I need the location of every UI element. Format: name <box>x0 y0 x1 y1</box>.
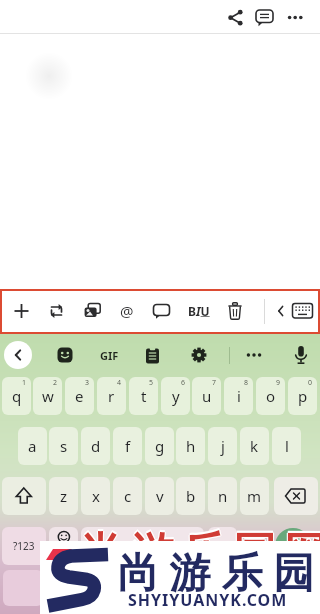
button[interactable]: e <box>65 377 94 415</box>
button[interactable] <box>274 477 318 515</box>
button[interactable]: w <box>33 377 62 415</box>
button[interactable] <box>2 477 46 515</box>
button[interactable]: s <box>49 427 78 465</box>
button[interactable]: j <box>208 427 237 465</box>
button[interactable] <box>49 527 78 565</box>
staticText: . <box>220 536 225 556</box>
staticText: g <box>155 436 165 456</box>
staticText: BIU <box>188 303 210 319</box>
button[interactable] <box>286 8 305 27</box>
staticText: d <box>91 436 101 456</box>
staticText: n <box>218 486 228 506</box>
button[interactable] <box>245 347 265 363</box>
staticText: f <box>125 436 131 456</box>
button[interactable] <box>13 300 30 322</box>
staticText: 尚游乐园网 <box>77 527 320 581</box>
staticText: i <box>237 386 241 406</box>
staticText: 4 <box>117 378 122 388</box>
staticText: y <box>172 386 180 406</box>
button[interactable]: a <box>18 427 47 465</box>
button[interactable] <box>46 300 67 322</box>
button[interactable]: u <box>192 377 221 415</box>
button[interactable] <box>225 300 245 322</box>
button[interactable]: z <box>49 477 78 515</box>
staticText: z <box>60 486 68 506</box>
staticText: 5 <box>149 378 154 388</box>
button[interactable]: c <box>113 477 142 515</box>
staticText: v <box>156 486 164 506</box>
staticText: a <box>28 436 37 456</box>
button[interactable]: @ <box>116 299 137 323</box>
button[interactable]: q <box>2 377 31 415</box>
button[interactable] <box>293 344 309 366</box>
staticText: ?123 <box>13 539 35 553</box>
button[interactable] <box>4 341 32 369</box>
button[interactable]: . <box>208 527 237 565</box>
button[interactable] <box>276 303 286 319</box>
staticText: 尚游乐园网 <box>75 527 320 581</box>
button[interactable]: n <box>208 477 237 515</box>
staticText: c <box>124 486 132 506</box>
staticText: b <box>186 486 196 506</box>
staticText: 尚游乐园网 <box>76 525 320 579</box>
button[interactable] <box>190 346 208 364</box>
button[interactable]: h <box>176 427 205 465</box>
button[interactable] <box>226 8 245 27</box>
staticText: p <box>298 386 308 406</box>
staticText: 尚游乐园网 <box>76 528 320 582</box>
staticText: 尚游乐园网 <box>76 527 320 581</box>
staticText: u <box>202 386 212 406</box>
staticText: h <box>186 436 196 456</box>
staticText: 2 <box>53 378 58 388</box>
button[interactable]: d <box>81 427 110 465</box>
staticText: e <box>75 386 84 406</box>
button[interactable]: ?123 <box>2 527 46 565</box>
button[interactable]: t <box>129 377 158 415</box>
staticText: m <box>247 486 262 506</box>
staticText: 1 <box>22 378 27 388</box>
staticText: t <box>141 386 147 406</box>
staticText: 8 <box>244 378 249 388</box>
staticText: o <box>266 386 276 406</box>
button[interactable]: x <box>81 477 110 515</box>
staticText: l <box>285 436 289 456</box>
button[interactable]: r <box>97 377 126 415</box>
staticText: 9 <box>276 378 281 388</box>
button[interactable]: GIF <box>96 347 122 363</box>
staticText: q <box>12 386 22 406</box>
button[interactable] <box>275 528 311 564</box>
button[interactable]: i <box>224 377 253 415</box>
staticText: SHYIYUANYK.COM <box>128 589 288 607</box>
staticText: 3 <box>85 378 90 388</box>
button[interactable] <box>151 300 172 322</box>
staticText: GIF <box>100 348 119 363</box>
button[interactable] <box>81 527 204 565</box>
staticText: r <box>108 386 115 406</box>
button[interactable]: f <box>113 427 142 465</box>
staticText: k <box>250 436 259 456</box>
button[interactable]: v <box>145 477 174 515</box>
button[interactable]: m <box>240 477 269 515</box>
button[interactable]: b <box>176 477 205 515</box>
button[interactable]: p <box>288 377 317 415</box>
button[interactable] <box>254 7 275 28</box>
button[interactable]: y <box>161 377 190 415</box>
staticText: x <box>92 486 100 506</box>
staticText: 尚游乐园 <box>112 548 320 600</box>
staticText: w <box>42 386 54 406</box>
button[interactable]: g <box>145 427 174 465</box>
button[interactable] <box>144 346 161 365</box>
staticText: 7 <box>212 378 217 388</box>
button[interactable] <box>82 300 103 322</box>
button[interactable] <box>291 301 314 321</box>
button[interactable]: o <box>256 377 285 415</box>
staticText: j <box>221 436 225 456</box>
button[interactable]: k <box>240 427 269 465</box>
button[interactable]: BIU <box>185 300 213 322</box>
staticText: s <box>60 436 68 456</box>
staticText: 6 <box>181 378 186 388</box>
button[interactable]: l <box>272 427 301 465</box>
staticText: 0 <box>308 378 313 388</box>
staticText: @ <box>120 301 134 321</box>
button[interactable] <box>56 346 74 364</box>
